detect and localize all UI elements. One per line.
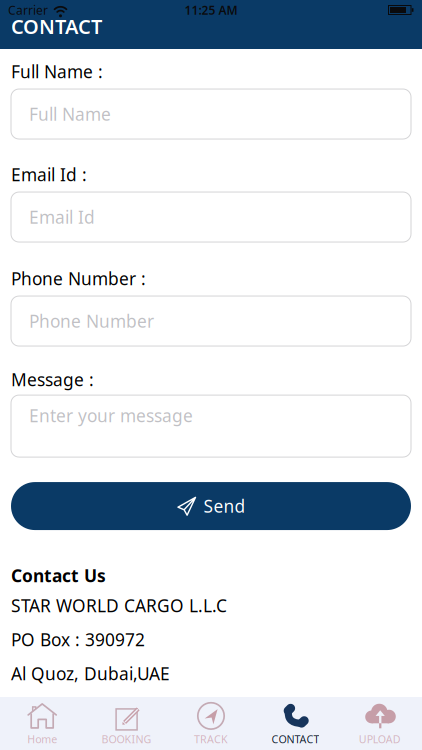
button[interactable]: Home xyxy=(0,697,84,750)
staticText: BOOKING xyxy=(102,732,152,746)
button[interactable]: TRACK xyxy=(169,697,253,750)
staticText: Contact Us xyxy=(11,564,106,587)
button[interactable]: BOOKING xyxy=(84,697,169,750)
button[interactable]: CONTACT xyxy=(253,697,338,750)
staticText: TRACK xyxy=(194,732,228,746)
staticText: PO Box : 390972 xyxy=(11,628,145,651)
staticText: Send xyxy=(203,495,245,518)
staticText: 11:25 AM xyxy=(184,2,237,18)
staticText: Enter your message xyxy=(29,404,193,427)
textField[interactable]: Full Name xyxy=(29,102,403,125)
textField[interactable]: Enter your message xyxy=(29,404,403,427)
staticText: Email Id xyxy=(29,205,95,228)
staticText: Phone Number xyxy=(29,309,154,332)
staticText: Email Id : xyxy=(11,163,87,186)
staticText: CONTACT xyxy=(271,732,319,746)
staticText: Full Name xyxy=(29,102,111,125)
staticText: Full Name xyxy=(29,102,111,125)
staticText: Home xyxy=(27,732,57,746)
staticText: Enter your message xyxy=(29,404,193,427)
staticText: Phone Number xyxy=(29,309,154,332)
staticText: Phone Number : xyxy=(11,267,146,290)
button[interactable]: UPLOAD xyxy=(338,697,422,750)
button[interactable]: Send xyxy=(11,482,411,530)
staticText: STAR WORLD CARGO L.L.C xyxy=(11,594,227,617)
staticText: Al Quoz, Dubai,UAE xyxy=(11,662,170,685)
staticText: Email Id xyxy=(29,205,95,228)
staticText: Message : xyxy=(11,368,94,391)
textField[interactable]: Email Id xyxy=(29,205,403,228)
staticText: CONTACT xyxy=(11,13,102,40)
staticText: UPLOAD xyxy=(359,732,401,746)
staticText: Full Name : xyxy=(11,60,103,83)
staticText: Carrier xyxy=(8,2,48,18)
textField[interactable]: Phone Number xyxy=(29,309,403,332)
